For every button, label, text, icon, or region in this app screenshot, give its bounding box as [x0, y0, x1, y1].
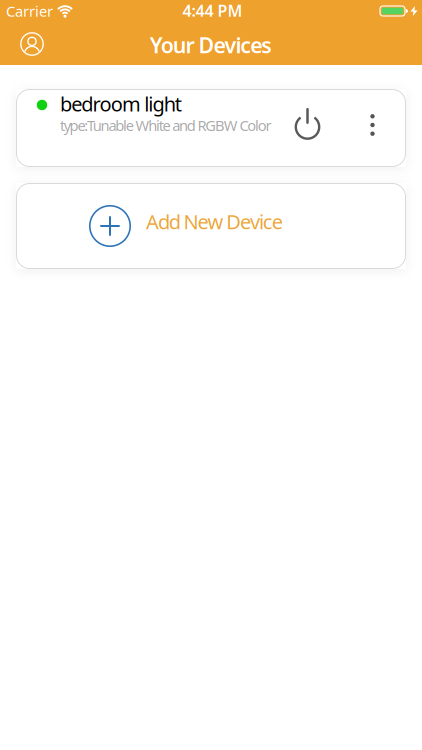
button[interactable]: bedroom light	[16, 89, 406, 167]
staticText: bedroom light	[60, 90, 182, 117]
staticText: type:Tunable White and RGBW Color	[60, 115, 272, 135]
staticText: Carrier	[6, 1, 53, 21]
staticText: Your Devices	[150, 31, 272, 59]
staticText: Add New Device	[146, 208, 283, 235]
button[interactable]: Add New Device	[16, 183, 406, 269]
button[interactable]: More options	[360, 110, 384, 140]
button[interactable]: Power	[290, 108, 324, 142]
staticText: 4:44 PM	[182, 0, 242, 21]
button[interactable]: Account	[20, 32, 44, 56]
